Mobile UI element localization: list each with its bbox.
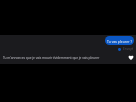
staticText: Envoyé	[123, 47, 134, 51]
staticText: Tu vas pleurer ?	[107, 39, 132, 43]
other: Sent	[118, 48, 121, 51]
button[interactable]: Sent	[118, 47, 134, 51]
button[interactable]: Like	[128, 55, 134, 60]
staticText: Tu m'annonces que je vais mourir évidemm…	[3, 56, 100, 60]
button[interactable]: Tu m'annonces que je vais mourir évidemm…	[0, 52, 136, 63]
button[interactable]: Tu vas pleurer ?	[105, 36, 134, 45]
